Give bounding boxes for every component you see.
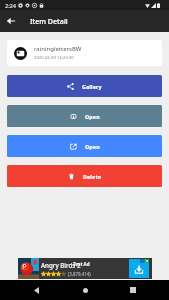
button[interactable]: Install [129, 259, 149, 278]
staticText: Gallery [82, 83, 102, 90]
staticText: 2020-04-09 14:23:30 [34, 55, 74, 61]
button[interactable]: Open [7, 105, 162, 127]
button[interactable]: Open [7, 135, 162, 157]
staticText: (3,879,414) [68, 271, 91, 277]
staticText: 2:24 [5, 2, 16, 9]
button[interactable]: raininglettersBW [7, 40, 162, 66]
button[interactable]: Back [26, 280, 46, 300]
button[interactable]: Gallery [7, 75, 162, 97]
button[interactable]: Angry Birds 2 [18, 258, 152, 279]
button[interactable]: Recent apps [123, 280, 143, 300]
button[interactable]: Home [75, 280, 95, 300]
staticText: Test Ad [73, 261, 90, 267]
staticText: Angry Birds 2 [41, 261, 81, 269]
staticText: Delete [83, 173, 102, 180]
button[interactable]: Delete [7, 165, 162, 187]
button[interactable]: Back [0, 10, 22, 32]
staticText: raininglettersBW [34, 45, 82, 53]
staticText: Open [85, 143, 100, 150]
staticText: Open [85, 113, 100, 120]
staticText: Item Detail [30, 16, 68, 26]
